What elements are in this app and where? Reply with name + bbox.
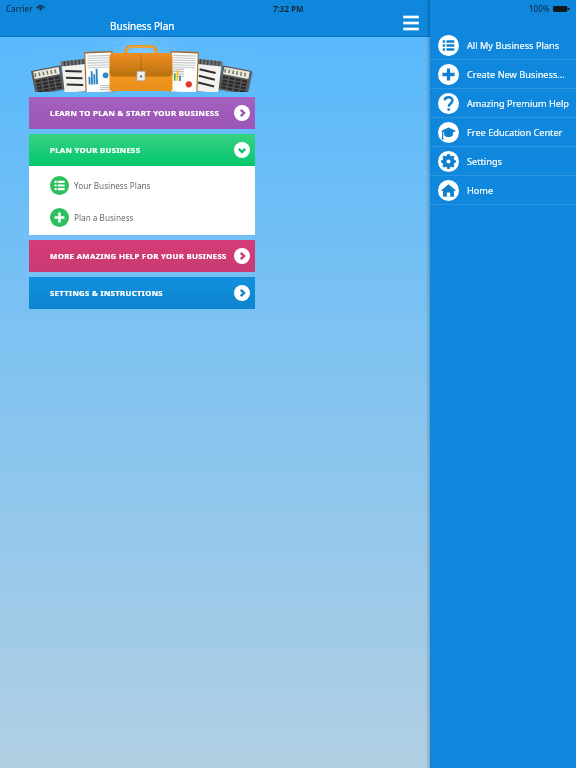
button[interactable]: Amazing Premium Help — [430, 89, 576, 117]
staticText: Your Business Plans — [74, 180, 151, 191]
staticText: 7:32 PM — [273, 3, 304, 14]
staticText: Carrier — [6, 3, 33, 14]
staticText: MORE AMAZING HELP FOR YOUR BUSINESS — [50, 251, 227, 262]
button[interactable]: Create New Business... — [430, 60, 576, 88]
button[interactable]: All My Business Plans — [430, 31, 576, 59]
staticText: Free Education Center — [467, 126, 563, 139]
button[interactable]: Menu — [401, 12, 421, 30]
staticText: 100% — [529, 3, 550, 14]
staticText: SETTINGS & INSTRUCTIONS — [50, 288, 163, 299]
button[interactable]: Your Business Plans — [29, 173, 255, 197]
button[interactable]: LEARN TO PLAN & START YOUR BUSINESS — [29, 97, 255, 129]
staticText: Home — [467, 184, 494, 197]
button[interactable]: Settings — [430, 147, 576, 175]
staticText: PLAN YOUR BUSINESS — [50, 145, 141, 156]
button[interactable]: SETTINGS & INSTRUCTIONS — [29, 277, 255, 309]
button[interactable]: MORE AMAZING HELP FOR YOUR BUSINESS — [29, 240, 255, 272]
button[interactable]: Free Education Center — [430, 118, 576, 146]
staticText: LEARN TO PLAN & START YOUR BUSINESS — [50, 108, 220, 119]
staticText: Amazing Premium Help — [467, 97, 569, 110]
button[interactable]: Plan a Business — [29, 205, 255, 229]
button[interactable]: PLAN YOUR BUSINESS — [29, 134, 255, 166]
staticText: Settings — [467, 155, 502, 168]
staticText: Plan a Business — [74, 212, 134, 223]
staticText: Business Plan — [110, 19, 175, 33]
button[interactable]: Home — [430, 176, 576, 204]
staticText: All My Business Plans — [467, 39, 560, 52]
staticText: Create New Business... — [467, 68, 565, 81]
